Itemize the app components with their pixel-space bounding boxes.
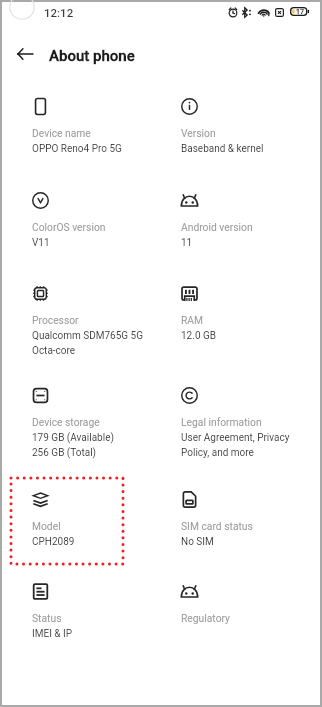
staticText: Baseband & kernel [181, 143, 264, 155]
button[interactable]: RAM [181, 287, 313, 342]
staticText: Model [32, 520, 61, 532]
staticText: 11 [181, 237, 193, 249]
button[interactable]: Legal information [181, 389, 313, 459]
button[interactable]: SIM card status [181, 493, 313, 548]
staticText: 179 GB (Available) [32, 432, 114, 444]
button[interactable]: Model [32, 493, 164, 548]
staticText: IMEI & IP [32, 628, 73, 640]
staticText: Version [181, 127, 216, 139]
staticText: SIM card status [181, 520, 253, 532]
staticText: 256 GB (Total) [32, 447, 97, 459]
staticText: 17 [296, 8, 304, 16]
button[interactable]: Status [32, 585, 164, 640]
staticText: V11 [32, 237, 50, 249]
staticText: About phone [49, 47, 135, 65]
staticText: User Agreement, Privacy [181, 432, 290, 444]
button[interactable]: Processor [32, 287, 164, 357]
button[interactable]: ColorOS version [32, 194, 164, 249]
button[interactable]: Back [10, 40, 38, 68]
staticText: Processor [32, 314, 79, 326]
staticText: Octa-core [32, 345, 76, 357]
staticText: ColorOS version [32, 221, 106, 233]
staticText: Device storage [32, 416, 100, 428]
button[interactable]: Version [181, 100, 313, 155]
staticText: Android version [181, 221, 253, 233]
staticText: OPPO Reno4 Pro 5G [32, 143, 122, 155]
staticText: 12.0 GB [181, 330, 217, 342]
staticText: 12:12 [44, 6, 74, 19]
staticText: Legal information [181, 416, 262, 428]
button[interactable]: Device name [32, 100, 164, 155]
staticText: Status [32, 612, 62, 624]
button[interactable]: Regulatory [181, 585, 313, 628]
staticText: Policy, and more [181, 447, 254, 459]
staticText: Regulatory [181, 612, 230, 624]
staticText: Device name [32, 127, 91, 139]
staticText: Qualcomm SDM765G 5G [32, 330, 144, 342]
staticText: No SIM [181, 536, 214, 548]
staticText: RAM [181, 314, 204, 326]
button[interactable]: Device storage [32, 389, 164, 459]
button[interactable]: Android version [181, 194, 313, 249]
staticText: CPH2089 [32, 536, 75, 548]
